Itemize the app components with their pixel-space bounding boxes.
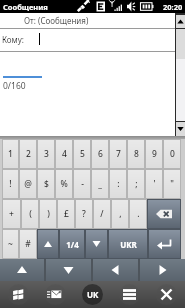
button[interactable]: 2 [19, 139, 37, 169]
staticText: 7 [116, 148, 121, 160]
staticText: + [9, 208, 14, 220]
staticText: @ [24, 178, 32, 190]
button[interactable]: Scroll up [176, 15, 185, 28]
staticText: ( [29, 208, 32, 220]
staticText: / [100, 208, 104, 220]
staticText: 5 [80, 148, 85, 160]
button[interactable]: ) [39, 199, 57, 229]
button[interactable]: ' [145, 169, 163, 199]
button[interactable]: 1 [2, 139, 19, 169]
staticText: 2 [26, 148, 31, 160]
staticText: 9 [152, 148, 157, 160]
staticText: - [81, 178, 84, 190]
button[interactable]: 5 [73, 139, 91, 169]
button[interactable]: Keyboard language [74, 281, 111, 308]
staticText: От: (Сообщения) [24, 15, 89, 26]
button[interactable]: 3 [37, 139, 55, 169]
staticText: UK [87, 289, 99, 300]
staticText: 0/160 [3, 80, 26, 92]
button[interactable]: " [163, 169, 181, 199]
button[interactable]: UKR [108, 229, 148, 259]
button[interactable]: Enter [148, 229, 181, 259]
staticText: 20:20 [163, 2, 183, 12]
button[interactable]: Scroll down [176, 122, 185, 136]
button[interactable]: ! [2, 169, 19, 199]
button[interactable]: / [93, 199, 111, 229]
button[interactable]: @ [19, 169, 37, 199]
button[interactable]: Messages [37, 281, 74, 308]
staticText: $ [44, 178, 49, 190]
button[interactable]: : [109, 169, 127, 199]
button[interactable]: 8 [127, 139, 145, 169]
button[interactable]: Menu [111, 281, 148, 308]
staticText: ; [135, 178, 138, 190]
button[interactable]: ; [127, 169, 145, 199]
button[interactable]: , [111, 199, 129, 229]
button[interactable]: Shift up [37, 229, 59, 259]
staticText: , [119, 208, 122, 220]
button[interactable]: ~ [2, 229, 19, 259]
staticText: ) [47, 208, 50, 220]
button[interactable]: % [55, 169, 73, 199]
button[interactable]: Backspace [147, 199, 181, 229]
staticText: Сообщения [3, 2, 48, 12]
staticText: 1 [8, 148, 13, 160]
button[interactable]: Close [148, 281, 185, 308]
staticText: 1/4 [66, 239, 79, 250]
staticText: UKR [120, 239, 137, 250]
button[interactable]: # [19, 229, 37, 259]
staticText: Кому: [2, 34, 24, 45]
button[interactable]: ? [75, 199, 93, 229]
button[interactable]: Up [0, 259, 44, 281]
staticText: ~ [8, 238, 13, 250]
staticText: _ [98, 178, 102, 190]
staticText: 8 [134, 148, 139, 160]
staticText: ? [82, 208, 86, 220]
staticText: # [25, 238, 31, 250]
staticText: % [60, 178, 68, 190]
staticText: 3 [44, 148, 49, 160]
staticText: " [170, 178, 174, 190]
button[interactable]: 6 [91, 139, 109, 169]
staticText: : [117, 178, 120, 190]
button[interactable]: Start [0, 281, 37, 308]
button[interactable]: $ [37, 169, 55, 199]
staticText: 0 [170, 148, 175, 160]
button[interactable]: Right [140, 259, 185, 281]
button[interactable]: £ [57, 199, 75, 229]
button[interactable]: . [129, 199, 147, 229]
button[interactable]: 1/4 [59, 229, 85, 259]
button[interactable]: + [2, 199, 21, 229]
button[interactable]: ( [21, 199, 39, 229]
staticText: £ [64, 208, 69, 220]
button[interactable]: 4 [55, 139, 73, 169]
staticText: 6 [98, 148, 103, 160]
button[interactable]: Left [93, 259, 138, 281]
button[interactable]: 7 [109, 139, 127, 169]
button[interactable]: 9 [145, 139, 163, 169]
staticText: 4 [62, 148, 67, 160]
button[interactable]: _ [91, 169, 109, 199]
staticText: . [137, 208, 140, 220]
staticText: ! [9, 178, 12, 190]
button[interactable]: 0 [163, 139, 181, 169]
button[interactable]: Shift down [85, 229, 108, 259]
staticText: ' [153, 178, 156, 190]
button[interactable]: - [73, 169, 91, 199]
button[interactable]: Down [46, 259, 91, 281]
